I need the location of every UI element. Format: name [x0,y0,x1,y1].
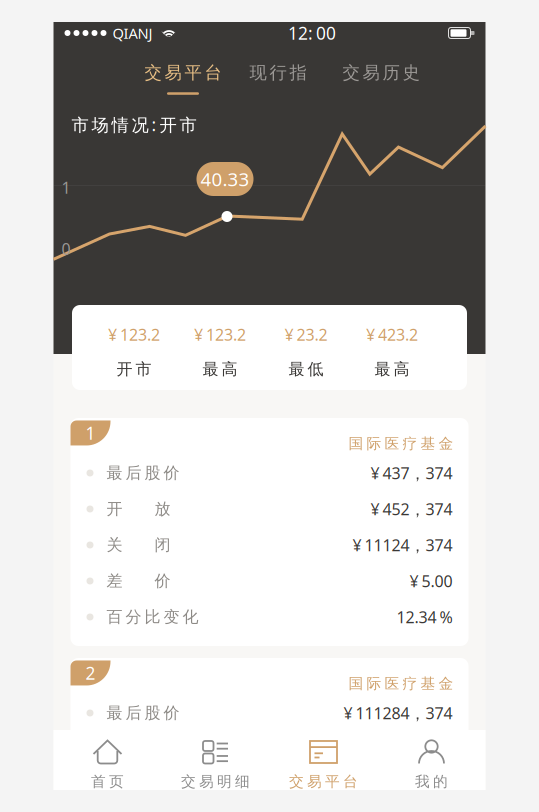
staticText: 我 的 [415,772,448,790]
staticText: ¥ 111284，374 [343,702,452,724]
staticText: 12: 00 [288,21,336,44]
staticText: ¥ 452，374 [370,498,452,520]
staticText: 0 [61,238,70,259]
staticText: ¥ 452，374 [370,738,452,760]
staticText: 交 易 平 台 [289,772,358,790]
staticText: 关 闭 [106,535,170,555]
staticText: 现 行 指 [249,62,306,83]
staticText: 1 [85,421,95,444]
staticText: 首 页 [91,772,124,790]
staticText: 开 放 [106,499,170,519]
staticText: ¥ 423.2 [366,324,418,345]
staticText: 开 市 [116,359,151,379]
staticText: ¥ 123.2 [194,324,246,345]
staticText: 国 际 医 疗 基 金 [348,434,453,452]
staticText: 市 场 情 况 : 开 市 [71,113,196,136]
staticText: 国 际 医 疗 基 金 [348,674,453,692]
staticText: 2 [85,661,95,684]
button[interactable]: 交 易 平 台 [140,62,225,95]
staticText: 开 放 [106,739,170,759]
button[interactable]: 交 易 平 台 [269,730,377,790]
button[interactable]: 现 行 指 [245,62,310,83]
staticText: ¥ 5.00 [409,570,452,592]
staticText: 40.33 [200,167,249,191]
button[interactable]: 我 的 [377,730,485,790]
staticText: 交 易 平 台 [144,62,221,83]
button[interactable]: 首 页 [53,730,161,790]
staticText: 最 后 股 价 [106,703,179,723]
staticText: ¥ 437，374 [370,462,452,484]
staticText: 交 易 明 细 [181,772,250,790]
staticText: 1 [61,177,70,198]
staticText: 差 价 [106,571,170,591]
staticText: QIANJ [112,23,152,43]
button[interactable]: 交 易 明 细 [161,730,269,790]
staticText: ¥ 11124，374 [352,534,452,556]
staticText: 12.34 % [396,606,452,628]
staticText: ¥ 23.2 [284,324,327,345]
staticText: 交 易 历 史 [342,62,419,83]
staticText: 最 后 股 价 [106,463,179,483]
staticText: 百 分 比 变 化 [106,607,198,627]
staticText: ¥ 123.2 [108,324,160,345]
staticText: 最 高 [374,359,409,379]
staticText: 最 低 [288,359,323,379]
button[interactable]: 交 易 历 史 [338,62,423,83]
staticText: 最 高 [202,359,237,379]
